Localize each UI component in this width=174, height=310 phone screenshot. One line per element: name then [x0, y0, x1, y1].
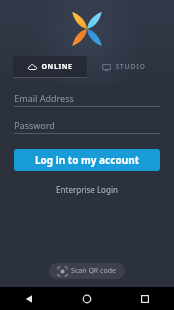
- staticText: ONLINE: [41, 62, 73, 72]
- staticText: STUDIO: [115, 62, 146, 72]
- button[interactable]: Back: [0, 287, 58, 310]
- button[interactable]: Scan QR code: [49, 263, 125, 279]
- button[interactable]: Email Address: [14, 91, 160, 107]
- staticText: Log in to my account: [35, 153, 139, 167]
- button[interactable]: Log in to my account: [14, 149, 160, 171]
- button[interactable]: Password: [14, 118, 160, 134]
- staticText: Scan QR code: [71, 266, 116, 276]
- button[interactable]: ONLINE: [13, 56, 87, 78]
- button[interactable]: Home: [58, 287, 116, 310]
- button[interactable]: STUDIO: [87, 56, 161, 78]
- staticText: Password: [14, 119, 55, 131]
- staticText: Enterprise Login: [56, 184, 118, 195]
- staticText: Email Address: [14, 92, 74, 104]
- button[interactable]: Recent apps: [116, 287, 174, 310]
- button[interactable]: Enterprise Login: [50, 182, 124, 197]
